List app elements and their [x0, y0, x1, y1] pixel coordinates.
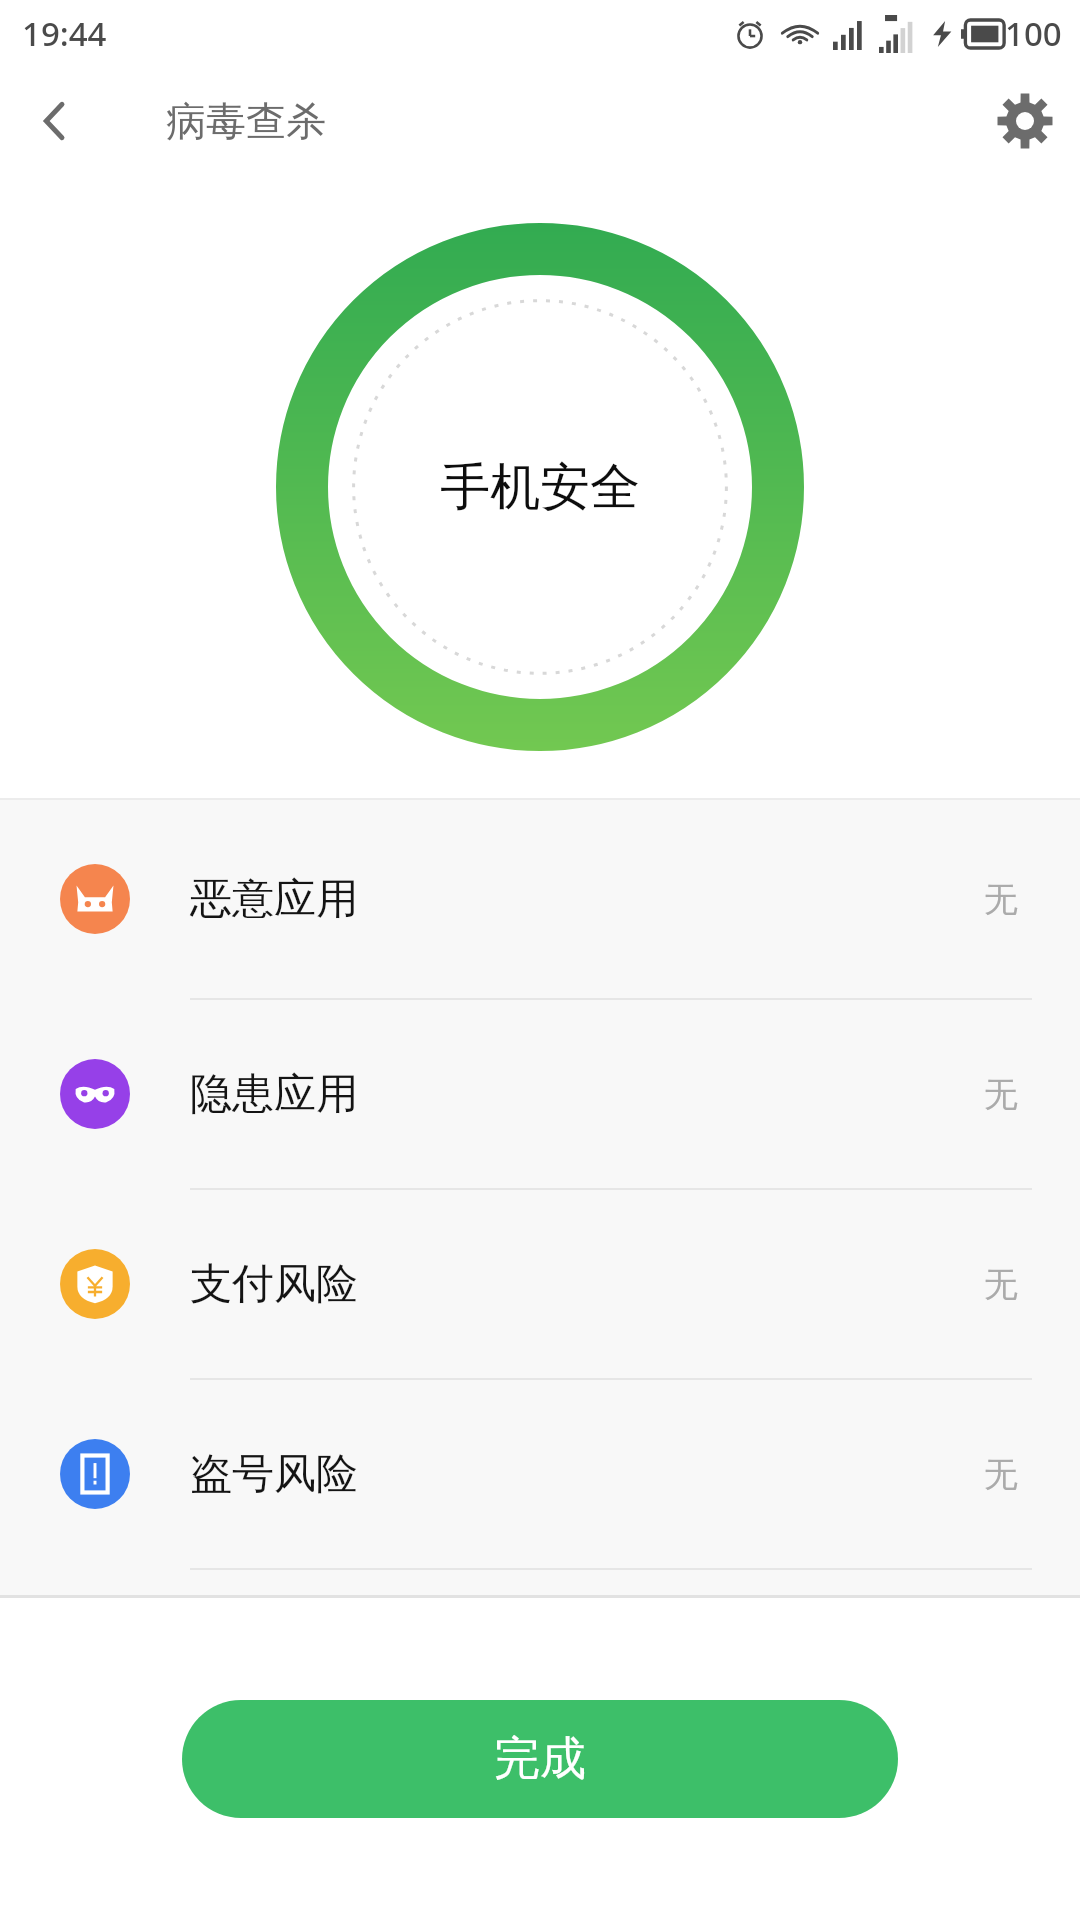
staticText: 无: [984, 1263, 1018, 1306]
button[interactable]: 恶意应用: [0, 800, 1080, 998]
button[interactable]: 隐患应用: [0, 1000, 1080, 1188]
staticText: 无: [984, 878, 1018, 921]
button[interactable]: 完成: [182, 1700, 898, 1818]
staticText: 无: [984, 1453, 1018, 1496]
button[interactable]: Back: [0, 66, 110, 176]
staticText: 无: [984, 1073, 1018, 1116]
button[interactable]: 盗号风险: [0, 1380, 1080, 1568]
button[interactable]: Settings: [970, 66, 1080, 176]
staticText: 恶意应用: [190, 873, 358, 926]
staticText: 100: [1005, 11, 1062, 56]
staticText: 手机安全: [440, 456, 640, 519]
staticText: 支付风险: [190, 1258, 358, 1311]
staticText: 盗号风险: [190, 1448, 358, 1501]
staticText: 完成: [494, 1730, 586, 1788]
staticText: 19:44: [22, 11, 107, 56]
button[interactable]: 支付风险: [0, 1190, 1080, 1378]
staticText: 病毒查杀: [166, 96, 326, 146]
staticText: 隐患应用: [190, 1068, 358, 1121]
